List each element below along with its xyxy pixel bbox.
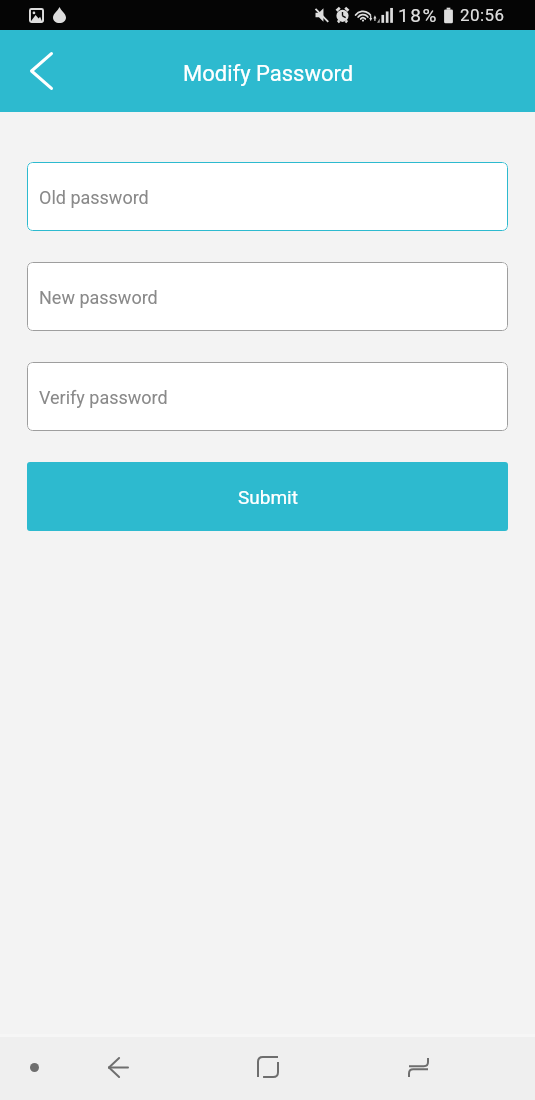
button[interactable]: Hide navigation bar bbox=[0, 1037, 68, 1097]
staticText: 18% bbox=[398, 4, 439, 26]
button[interactable]: Verify password bbox=[27, 362, 508, 431]
button[interactable]: New password bbox=[27, 262, 508, 331]
button[interactable]: Old password bbox=[27, 162, 508, 231]
staticText: New password bbox=[39, 287, 158, 308]
staticText: Old password bbox=[39, 187, 149, 208]
staticText: Submit bbox=[238, 486, 298, 508]
button[interactable]: Recents bbox=[343, 1037, 493, 1097]
button[interactable]: Back bbox=[14, 44, 68, 98]
button[interactable]: Home bbox=[193, 1037, 343, 1097]
staticText: Modify Password bbox=[183, 61, 354, 87]
button[interactable]: Submit bbox=[27, 462, 508, 531]
staticText: Verify password bbox=[39, 387, 168, 408]
button[interactable]: Back bbox=[43, 1037, 193, 1097]
staticText: 20:56 bbox=[460, 5, 505, 25]
